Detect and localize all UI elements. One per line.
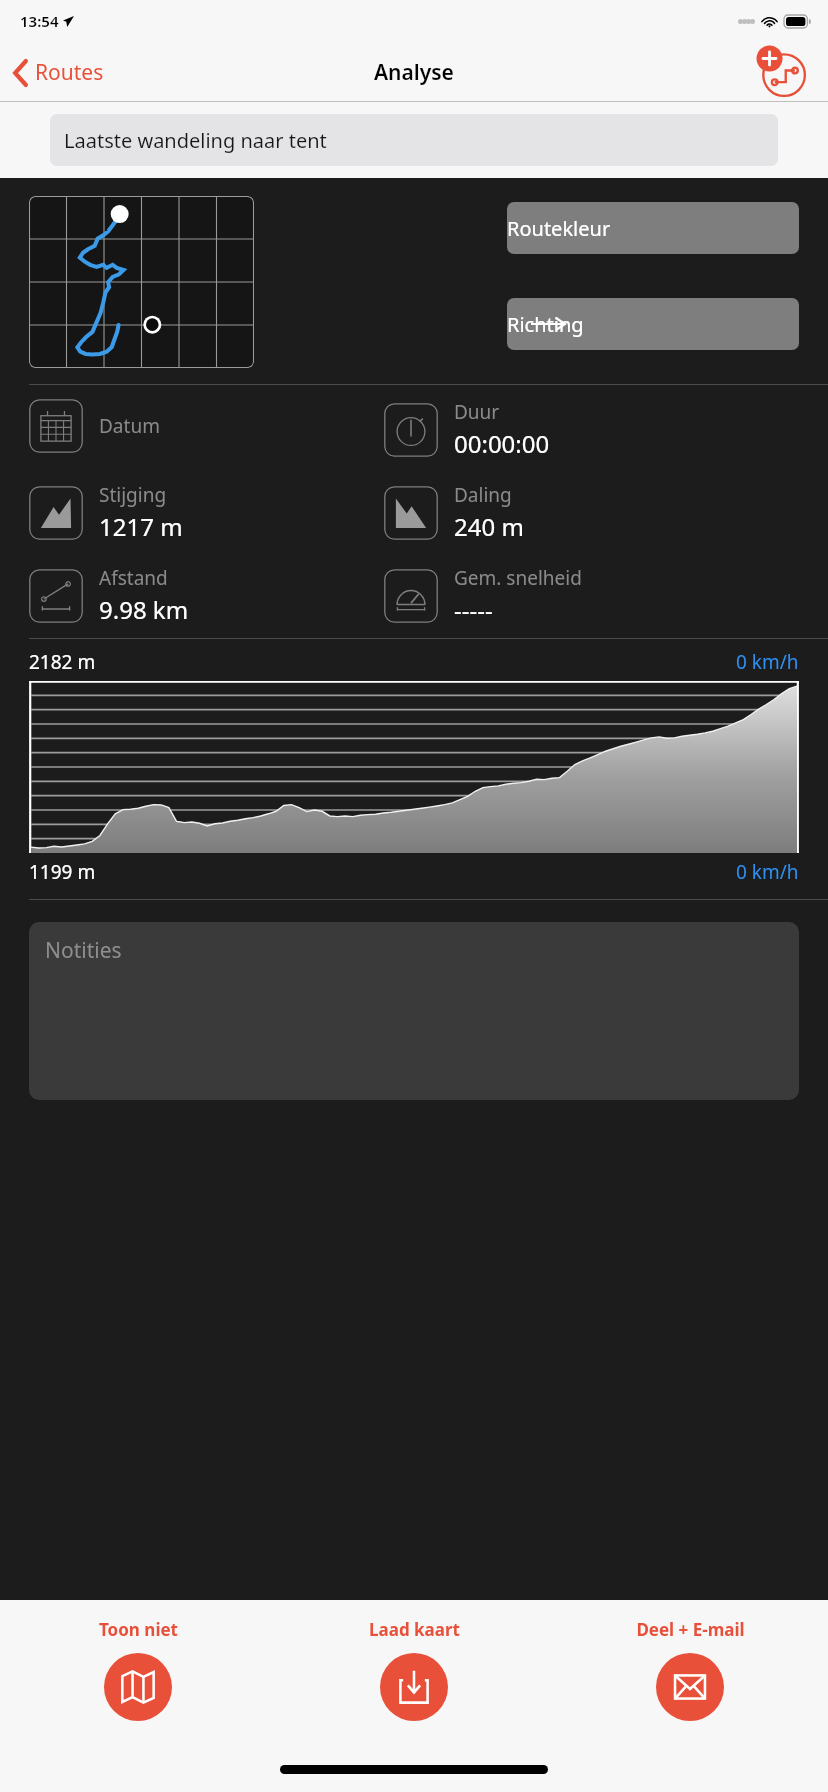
button[interactable]: Gem. snelheid (384, 565, 808, 626)
staticText: ----- (454, 593, 493, 626)
button[interactable]: Laad kaart (276, 1614, 552, 1721)
staticText: 1217 m (99, 510, 183, 543)
staticText: Notities (45, 936, 122, 965)
button[interactable]: Daling (384, 482, 808, 543)
staticText: 00:00:00 (454, 427, 550, 460)
staticText: Analyse (374, 58, 454, 87)
staticText: Laatste wandeling naar tent (64, 127, 327, 154)
button[interactable]: Laatste wandeling naar tent (50, 114, 778, 166)
staticText: Duur (454, 399, 500, 425)
button[interactable]: Routes (0, 52, 114, 93)
staticText: 13:54 (20, 11, 59, 31)
button[interactable] (29, 196, 254, 368)
staticText: 0 km/h (736, 649, 799, 675)
staticText: Toon niet (99, 1618, 178, 1641)
staticText: Daling (454, 482, 512, 508)
staticText: Richting (507, 311, 799, 338)
staticText: Routes (35, 58, 104, 87)
button[interactable] (29, 681, 799, 853)
staticText: Laad kaart (369, 1618, 460, 1641)
button[interactable]: Stijging (29, 482, 384, 543)
staticText: Routekleur (507, 215, 799, 242)
staticText: Afstand (99, 565, 168, 591)
staticText: 9.98 km (99, 593, 189, 626)
button[interactable]: Afstand (29, 565, 384, 626)
button[interactable]: Toon niet (0, 1614, 276, 1721)
staticText: 2182 m (29, 649, 96, 675)
staticText: Stijging (99, 482, 167, 508)
staticText: 1199 m (29, 859, 96, 885)
staticText: 240 m (454, 510, 524, 543)
button[interactable]: Notities (29, 922, 799, 1100)
staticText: Gem. snelheid (454, 565, 582, 591)
button[interactable]: Duur (384, 399, 808, 460)
button[interactable]: Deel + E-mail (552, 1614, 828, 1721)
button[interactable]: Nieuwe route toevoegen (756, 46, 828, 98)
staticText: Datum (99, 413, 160, 439)
button[interactable]: Routekleur (507, 202, 799, 254)
button[interactable]: Datum (29, 399, 384, 453)
staticText: Deel + E-mail (636, 1618, 745, 1641)
button[interactable]: Richting (507, 298, 799, 350)
staticText: 0 km/h (736, 859, 799, 885)
